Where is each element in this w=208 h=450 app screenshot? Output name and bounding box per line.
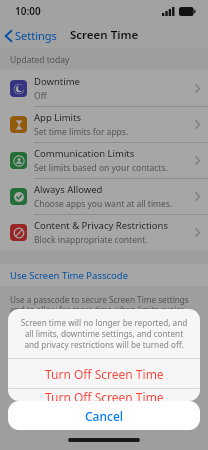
staticText: Turn Off Screen Time — [45, 366, 164, 382]
staticText: Always Allowed — [34, 183, 103, 196]
staticText: Turn Off Screen Time — [45, 389, 164, 401]
button[interactable]: Cancel — [8, 401, 200, 430]
button[interactable]: Settings — [0, 25, 63, 46]
staticText: 10:00 — [15, 4, 41, 18]
staticText: App Limits — [34, 111, 81, 124]
button[interactable]: Downtime — [0, 70, 208, 106]
staticText: Screen Time — [70, 27, 139, 43]
staticText: Set time limits for apps. — [34, 126, 129, 138]
button[interactable]: Use Screen Time Passcode — [0, 264, 208, 286]
staticText: Off — [34, 90, 47, 102]
button[interactable]: Turn Off Screen Time — [8, 389, 200, 401]
button[interactable]: Turn Off Screen Time — [8, 359, 200, 388]
button[interactable]: Always Allowed — [0, 178, 208, 214]
staticText: Use a passcode to secure Screen Time set… — [10, 294, 196, 316]
staticText: Set limits based on your contacts. — [34, 162, 168, 174]
staticText: Communication Limits — [34, 147, 135, 160]
staticText: Downtime — [34, 75, 80, 88]
button[interactable]: Content & Privacy Restrictions — [0, 214, 208, 250]
staticText: Block inappropriate content. — [34, 234, 148, 246]
button[interactable]: App Limits — [0, 106, 208, 142]
staticText: Choose apps you want at all times. — [34, 198, 173, 210]
staticText: Cancel — [85, 408, 124, 424]
staticText: Settings — [15, 28, 57, 43]
staticText: Content & Privacy Restrictions — [34, 219, 168, 232]
staticText: Use Screen Time Passcode — [10, 269, 129, 282]
staticText: Updated today — [10, 54, 70, 66]
button[interactable]: Communication Limits — [0, 142, 208, 178]
staticText: Screen time will no longer be reported, … — [20, 317, 188, 350]
